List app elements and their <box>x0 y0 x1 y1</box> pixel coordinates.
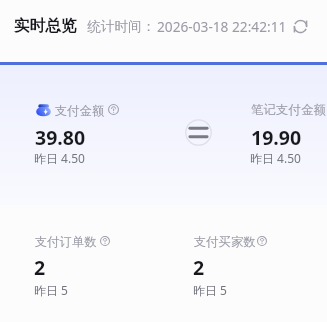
staticText: 2 <box>193 254 205 281</box>
staticText: 2026-03-18 22:42:11 <box>157 17 287 36</box>
staticText: 39.80 <box>35 124 86 151</box>
button[interactable] <box>34 232 154 302</box>
staticText: 昨日 5 <box>34 282 68 298</box>
button[interactable]: Refresh <box>293 19 308 34</box>
button[interactable] <box>250 99 327 169</box>
staticText: 昨日 4.50 <box>34 150 85 166</box>
staticText: 2 <box>34 254 46 281</box>
staticText: 昨日 4.50 <box>250 150 301 166</box>
staticText: 支付金额 <box>55 103 105 118</box>
staticText: 实时总览 <box>14 16 77 36</box>
button[interactable] <box>34 99 154 169</box>
staticText: 昨日 5 <box>193 282 227 298</box>
button[interactable] <box>193 232 313 302</box>
staticText: 统计时间： <box>87 18 156 35</box>
staticText: 笔记支付金额 <box>251 102 326 118</box>
staticText: 支付订单数 <box>35 234 97 249</box>
button[interactable]: 实时总览 <box>14 16 77 36</box>
staticText: 支付买家数 <box>194 234 256 249</box>
staticText: 19.90 <box>251 124 302 151</box>
